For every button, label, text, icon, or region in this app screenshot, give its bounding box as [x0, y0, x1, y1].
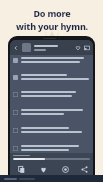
button[interactable]: Favourite: [32, 165, 54, 180]
button[interactable]: [22, 43, 31, 52]
button[interactable]: [13, 109, 90, 115]
staticText: with your hymn.: [16, 20, 88, 32]
staticText: Copy Text: [14, 175, 29, 179]
button[interactable]: [13, 57, 90, 63]
button[interactable]: [13, 158, 90, 160]
button[interactable]: Favourite: [75, 45, 81, 51]
button[interactable]: [13, 91, 90, 97]
button[interactable]: Back: [13, 45, 19, 51]
button[interactable]: [13, 145, 90, 151]
button[interactable]: Copy Text: [10, 165, 32, 180]
button[interactable]: Select All: [54, 165, 76, 180]
button[interactable]: More options: [84, 45, 90, 51]
staticText: Do more: [33, 7, 71, 19]
button[interactable]: Share: [76, 165, 93, 180]
button[interactable]: [13, 74, 90, 80]
button[interactable]: [13, 127, 90, 133]
